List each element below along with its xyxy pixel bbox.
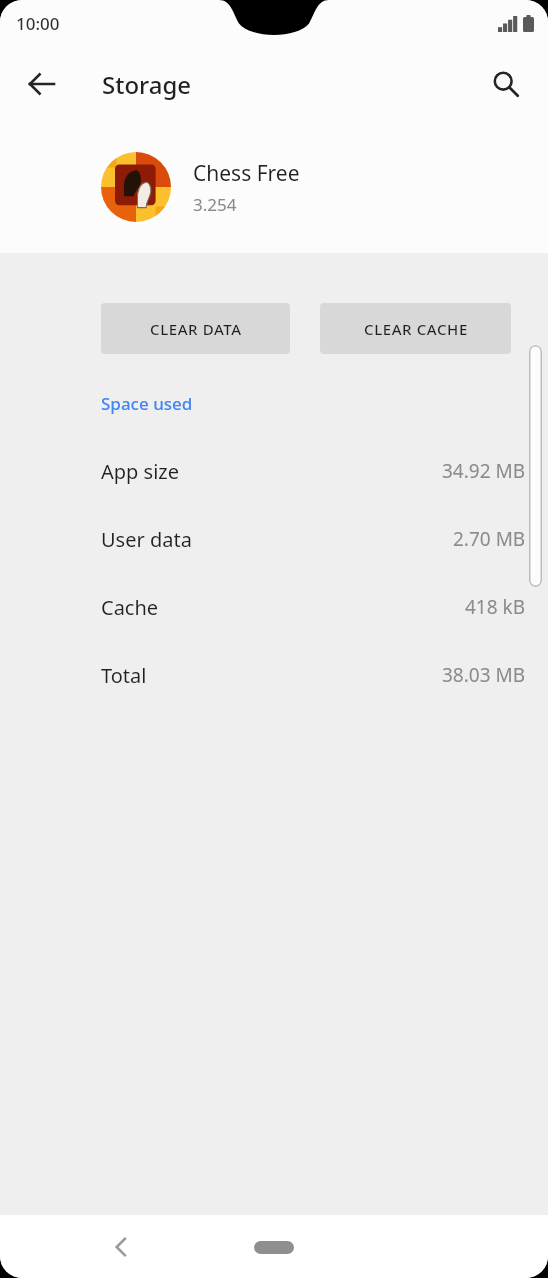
staticText: CLEAR DATA xyxy=(150,319,242,339)
staticText: 34.92 MB xyxy=(442,458,526,484)
staticText: CLEAR CACHE xyxy=(364,319,468,339)
staticText: 418 kB xyxy=(465,594,526,620)
staticText: Total xyxy=(101,662,147,689)
staticText: Storage xyxy=(102,68,192,101)
button[interactable]: Total xyxy=(0,641,548,709)
button[interactable]: Chess Free xyxy=(0,142,548,232)
button[interactable]: Home xyxy=(244,1230,304,1264)
button[interactable]: App size xyxy=(0,437,548,505)
button[interactable]: User data xyxy=(0,505,548,573)
button[interactable]: Cache xyxy=(0,573,548,641)
staticText: 38.03 MB xyxy=(442,662,526,688)
staticText: Chess Free xyxy=(193,159,300,188)
button[interactable]: Back xyxy=(96,1222,146,1272)
button[interactable]: Back xyxy=(16,58,68,110)
staticText: 3.254 xyxy=(193,193,237,216)
button[interactable]: CLEAR DATA xyxy=(101,303,290,354)
button[interactable]: Search xyxy=(480,58,532,110)
staticText: 2.70 MB xyxy=(453,526,526,552)
staticText: Cache xyxy=(101,594,159,621)
staticText: Space used xyxy=(101,392,193,415)
button[interactable]: CLEAR CACHE xyxy=(320,303,511,354)
staticText: App size xyxy=(101,458,179,485)
button[interactable] xyxy=(529,345,542,587)
staticText: User data xyxy=(101,526,192,553)
staticText: 10:00 xyxy=(16,12,60,35)
